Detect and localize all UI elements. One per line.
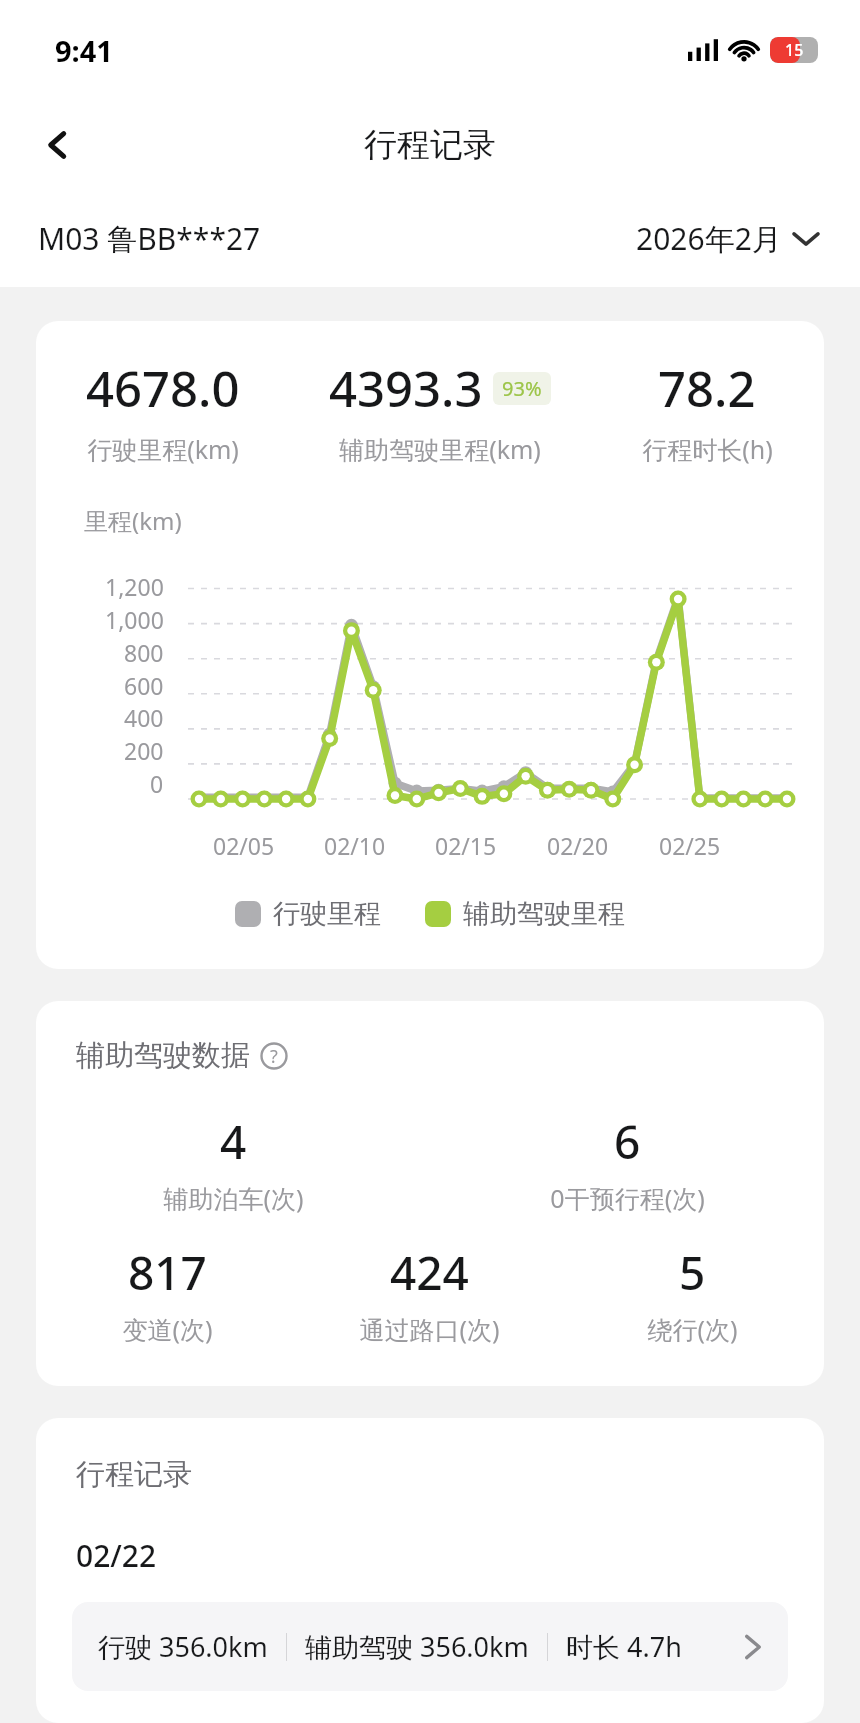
staticText: 1,000 [105, 604, 164, 635]
staticText: 绕行(次) [647, 1312, 738, 1346]
staticText: 4 [220, 1110, 247, 1173]
staticText: 行程时长(h) [642, 432, 773, 466]
staticText: 78.2 [658, 355, 756, 422]
staticText: 行驶 356.0km [98, 1628, 268, 1665]
staticText: 9:41 [55, 31, 113, 70]
button[interactable]: 2026年2月 [632, 214, 822, 263]
staticText: 辅助泊车(次) [163, 1181, 304, 1215]
staticText: 93% [502, 375, 542, 402]
staticText: 辅助驾驶里程(km) [339, 432, 541, 466]
staticText: 2026年2月 [636, 218, 782, 259]
staticText: 02/05 [213, 830, 275, 861]
staticText: 0干预行程(次) [550, 1181, 705, 1215]
staticText: 里程(km) [84, 504, 182, 537]
staticText: 5 [679, 1241, 706, 1304]
staticText: 辅助驾驶 356.0km [305, 1628, 529, 1665]
staticText: 0 [150, 768, 164, 799]
staticText: M03 鲁BB***27 [38, 218, 261, 259]
staticText: 辅助驾驶数据 [76, 1037, 250, 1074]
staticText: 600 [124, 670, 164, 701]
staticText: 800 [124, 637, 164, 668]
staticText: 200 [124, 735, 164, 766]
staticText: 1,200 [105, 571, 164, 602]
staticText: 4678.0 [86, 355, 240, 422]
staticText: 行驶里程(km) [87, 432, 239, 466]
staticText: 424 [390, 1241, 469, 1304]
staticText: ? [270, 1044, 278, 1069]
staticText: 行程记录 [76, 1456, 192, 1493]
staticText: 15 [785, 39, 804, 61]
staticText: 4393.3 [329, 355, 483, 422]
staticText: 通过路口(次) [359, 1312, 500, 1346]
staticText: 817 [128, 1241, 207, 1304]
staticText: 辅助驾驶里程 [463, 897, 625, 931]
button[interactable]: 行驶 356.0km [72, 1602, 788, 1691]
staticText: 02/10 [324, 830, 386, 861]
staticText: 时长 4.7h [566, 1628, 682, 1665]
button[interactable]: Back [28, 115, 88, 175]
staticText: 02/22 [76, 1535, 157, 1576]
staticText: 400 [124, 702, 164, 733]
button[interactable]: Info [260, 1042, 288, 1070]
staticText: 变道(次) [122, 1312, 213, 1346]
staticText: 行程记录 [364, 124, 496, 166]
staticText: 行驶里程 [273, 897, 381, 931]
staticText: 02/20 [547, 830, 609, 861]
staticText: 02/25 [659, 830, 721, 861]
staticText: 6 [614, 1110, 641, 1173]
staticText: 02/15 [435, 830, 497, 861]
